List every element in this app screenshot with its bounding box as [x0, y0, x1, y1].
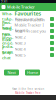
staticText: Favourites [14, 10, 41, 17]
staticText: Note 2 [14, 34, 25, 40]
staticText: Next [7, 70, 15, 75]
staticText: Messenger [2, 35, 13, 51]
staticText: WhatsApp [2, 11, 13, 27]
staticText: Mobile Tracker [7, 4, 35, 10]
staticText: Facebook [2, 32, 11, 42]
staticText: 9:41 [1, 0, 8, 3]
staticText: Note 4 [14, 46, 25, 52]
staticText: Note 1 in case you [14, 28, 45, 34]
button[interactable]: Next [4, 69, 19, 75]
staticText: Telegram [2, 26, 13, 36]
staticText: Mobile Tracker Free [15, 91, 41, 95]
staticText: How to see chats [14, 16, 43, 22]
staticText: Note 3 [14, 40, 25, 46]
staticText: Password [2, 20, 12, 30]
staticText: Instagram [2, 44, 13, 54]
staticText: Note 5 [14, 52, 25, 58]
staticText: Snapchat [2, 50, 13, 60]
staticText: Password used in Mobile Tracker I forgot… [14, 17, 44, 33]
staticText: Have it the free version [11, 87, 44, 91]
button[interactable]: Home [25, 69, 40, 75]
staticText: Home [27, 70, 38, 75]
